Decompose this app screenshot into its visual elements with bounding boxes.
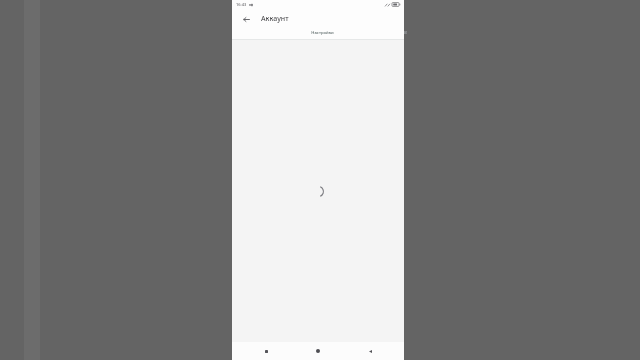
button[interactable]: Назад bbox=[239, 12, 253, 26]
button[interactable]: Обзор bbox=[260, 345, 272, 357]
staticText: 16:43 bbox=[236, 2, 247, 7]
button[interactable]: Настройки bbox=[241, 28, 404, 40]
button[interactable]: Главный экран bbox=[312, 345, 324, 357]
staticText: Аккаунт bbox=[261, 14, 289, 24]
button[interactable]: Назад bbox=[364, 345, 376, 357]
staticText: Настройки bbox=[311, 30, 334, 36]
